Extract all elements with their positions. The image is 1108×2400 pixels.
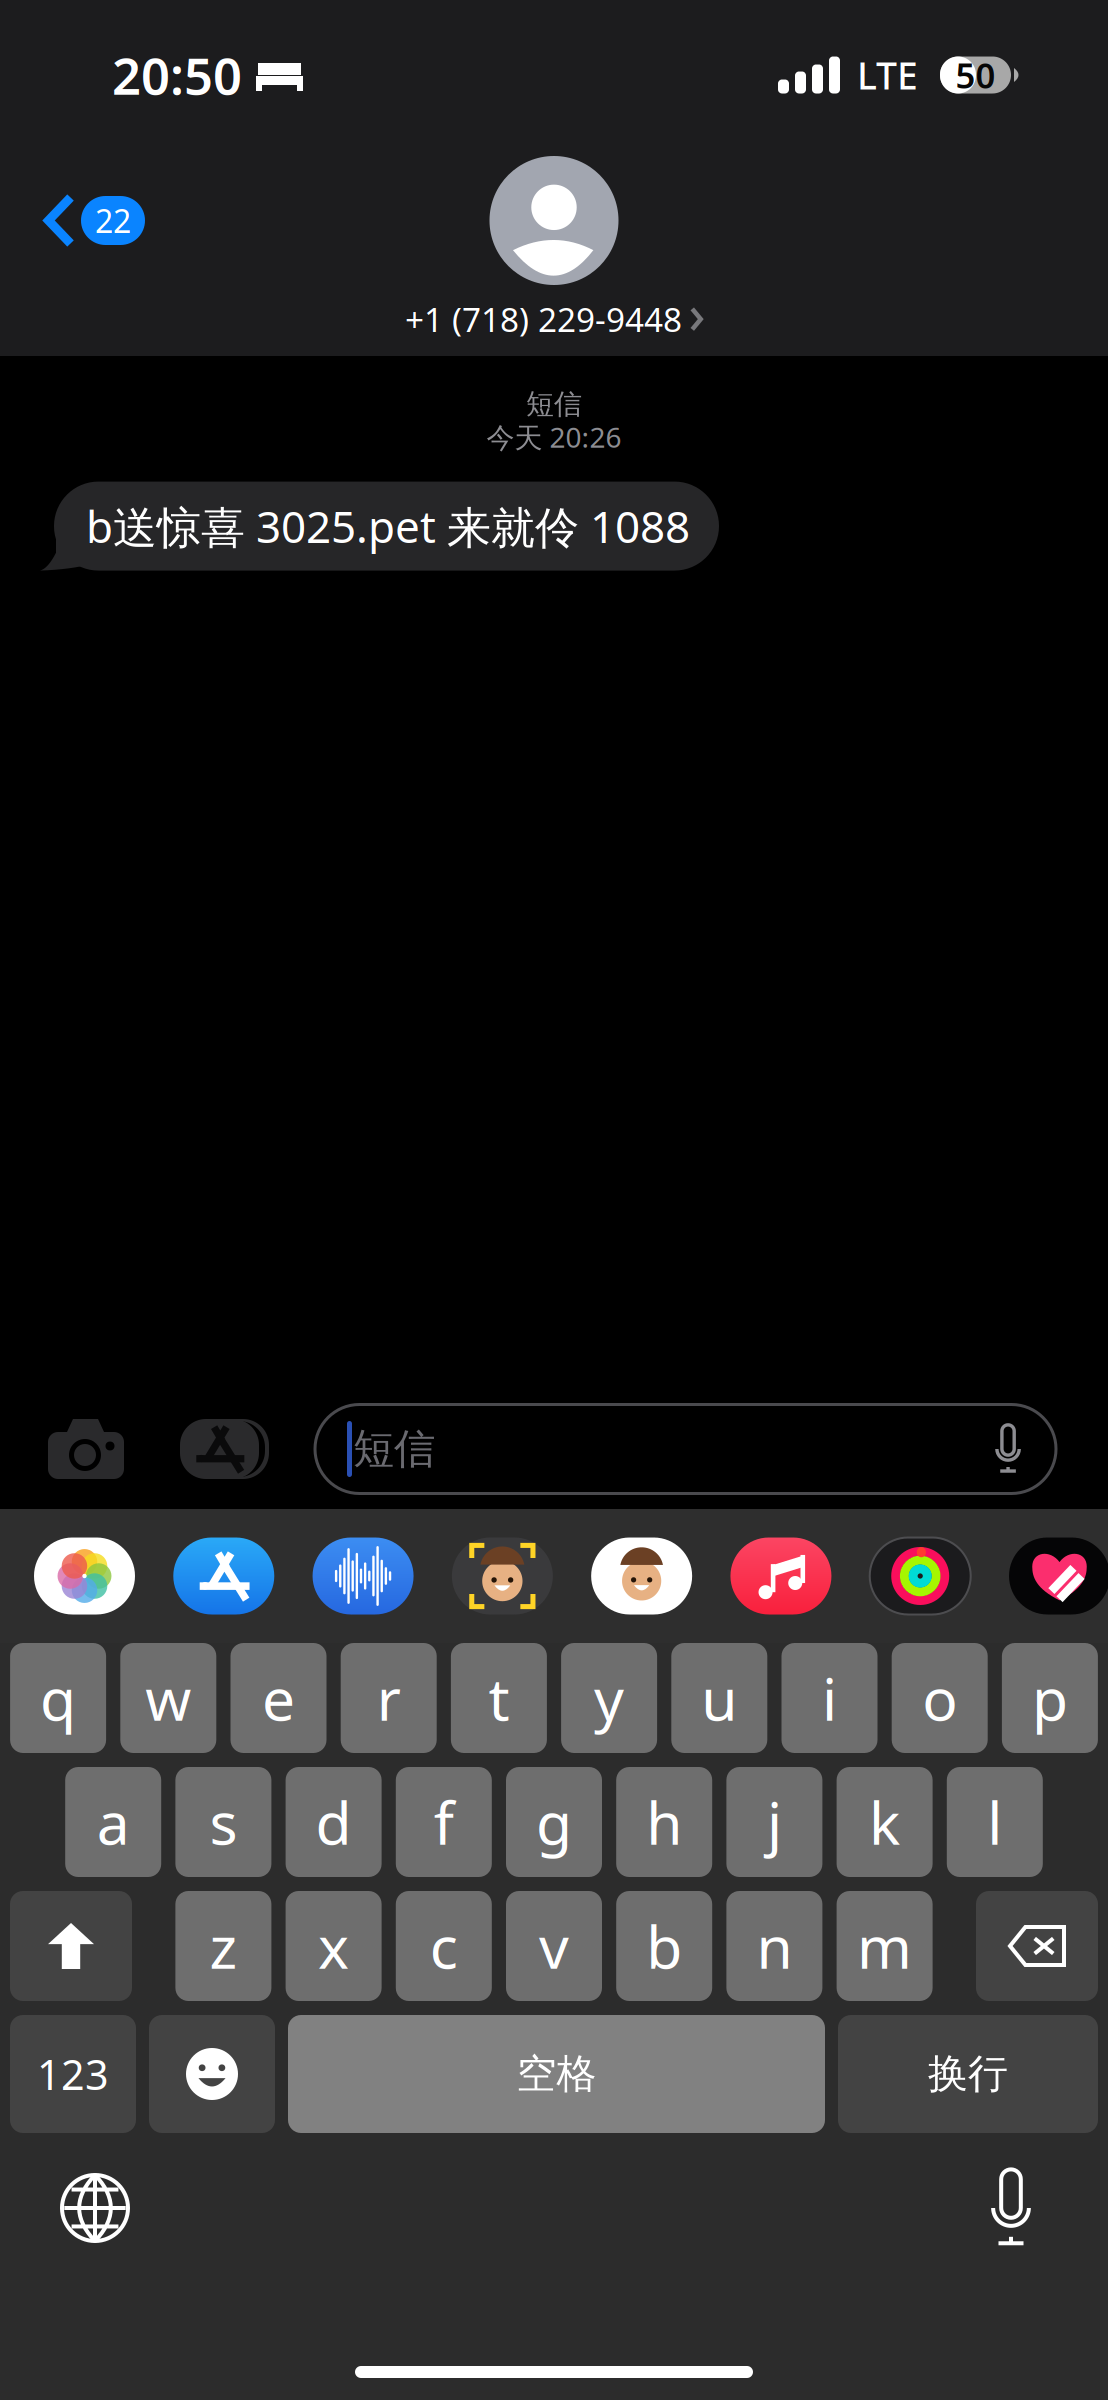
staticText: j bbox=[767, 1783, 782, 1861]
staticText: m bbox=[857, 1907, 912, 1985]
button[interactable]: n bbox=[726, 1891, 822, 2001]
staticText: q bbox=[40, 1659, 76, 1737]
button[interactable]: Camera bbox=[0, 1389, 124, 1509]
button[interactable]: e bbox=[230, 1643, 326, 1753]
button[interactable]: p bbox=[1002, 1643, 1098, 1753]
button[interactable]: j bbox=[726, 1767, 822, 1877]
staticText: n bbox=[756, 1907, 792, 1985]
staticText: +1 (718) 229-9448 bbox=[405, 297, 682, 341]
staticText: y bbox=[594, 1659, 624, 1737]
button[interactable]: Delete bbox=[976, 1891, 1098, 2001]
button[interactable]: q bbox=[10, 1643, 106, 1753]
staticText: z bbox=[209, 1907, 237, 1985]
button[interactable]: Health bbox=[1009, 1537, 1108, 1614]
staticText: w bbox=[145, 1659, 191, 1737]
button[interactable]: Emoji bbox=[149, 2015, 275, 2133]
button[interactable]: f bbox=[396, 1767, 492, 1877]
button[interactable]: 空格 bbox=[288, 2015, 825, 2133]
button[interactable]: Apps bbox=[124, 1389, 315, 1509]
button[interactable]: y bbox=[561, 1643, 657, 1753]
staticText: 22 bbox=[95, 199, 131, 242]
button[interactable]: +1 (718) 229-9448 bbox=[405, 285, 703, 345]
staticText: u bbox=[701, 1659, 737, 1737]
button[interactable]: c bbox=[396, 1891, 492, 2001]
button[interactable]: z bbox=[175, 1891, 271, 2001]
staticText: x bbox=[318, 1907, 349, 1985]
button[interactable]: Music bbox=[730, 1537, 831, 1614]
button[interactable]: h bbox=[616, 1767, 712, 1877]
staticText: 20:50 bbox=[112, 41, 242, 109]
staticText: k bbox=[869, 1783, 900, 1861]
staticText: 50 bbox=[955, 52, 995, 98]
button[interactable]: t bbox=[451, 1643, 547, 1753]
button[interactable]: s bbox=[175, 1767, 271, 1877]
staticText: r bbox=[377, 1659, 401, 1737]
staticText: 短信 bbox=[353, 1424, 435, 1474]
button[interactable]: Back bbox=[0, 130, 145, 248]
button[interactable]: v bbox=[506, 1891, 602, 2001]
staticText: 空格 bbox=[516, 2049, 596, 2098]
staticText: b送惊喜 3025.pet 来就伶 1088 bbox=[86, 497, 690, 555]
staticText: 123 bbox=[37, 2047, 109, 2101]
button[interactable]: Memoji bbox=[452, 1537, 553, 1614]
staticText: d bbox=[316, 1783, 352, 1861]
staticText: f bbox=[434, 1783, 454, 1861]
staticText: g bbox=[536, 1783, 572, 1861]
staticText: 换行 bbox=[928, 2049, 1008, 2098]
button[interactable]: k bbox=[837, 1767, 933, 1877]
staticText: t bbox=[488, 1659, 509, 1737]
button[interactable]: App Store bbox=[173, 1537, 274, 1614]
staticText: c bbox=[430, 1907, 458, 1985]
button[interactable]: a bbox=[65, 1767, 161, 1877]
staticText: v bbox=[539, 1907, 569, 1985]
staticText: e bbox=[262, 1659, 295, 1737]
staticText: i bbox=[822, 1659, 837, 1737]
button[interactable]: g bbox=[506, 1767, 602, 1877]
button[interactable]: Photos bbox=[34, 1537, 135, 1614]
staticText: o bbox=[922, 1659, 957, 1737]
button[interactable]: x bbox=[286, 1891, 382, 2001]
button[interactable]: 123 bbox=[10, 2015, 136, 2133]
staticText: p bbox=[1032, 1659, 1068, 1737]
staticText: a bbox=[97, 1783, 130, 1861]
button[interactable]: i bbox=[781, 1643, 877, 1753]
button[interactable]: Next keyboard bbox=[40, 2153, 150, 2263]
button[interactable]: b bbox=[616, 1891, 712, 2001]
button[interactable]: Memoji stickers bbox=[591, 1537, 692, 1614]
button[interactable]: Fitness bbox=[870, 1537, 971, 1614]
button[interactable]: r bbox=[341, 1643, 437, 1753]
button[interactable]: w bbox=[120, 1643, 216, 1753]
button[interactable]: Dictate bbox=[956, 2153, 1066, 2263]
staticText: h bbox=[646, 1783, 682, 1861]
staticText: 今天 20:26 bbox=[486, 418, 621, 456]
staticText: l bbox=[987, 1783, 1002, 1861]
staticText: 短信 bbox=[526, 387, 582, 421]
button[interactable]: m bbox=[837, 1891, 933, 2001]
staticText: b bbox=[646, 1907, 682, 1985]
button[interactable]: Audio bbox=[313, 1537, 414, 1614]
button[interactable]: u bbox=[671, 1643, 767, 1753]
staticText: s bbox=[209, 1783, 237, 1861]
button[interactable]: Shift bbox=[10, 1891, 132, 2001]
staticText: LTE bbox=[857, 50, 918, 100]
button[interactable]: o bbox=[892, 1643, 988, 1753]
button[interactable]: d bbox=[286, 1767, 382, 1877]
button[interactable]: l bbox=[947, 1767, 1043, 1877]
button[interactable]: 换行 bbox=[838, 2015, 1098, 2133]
